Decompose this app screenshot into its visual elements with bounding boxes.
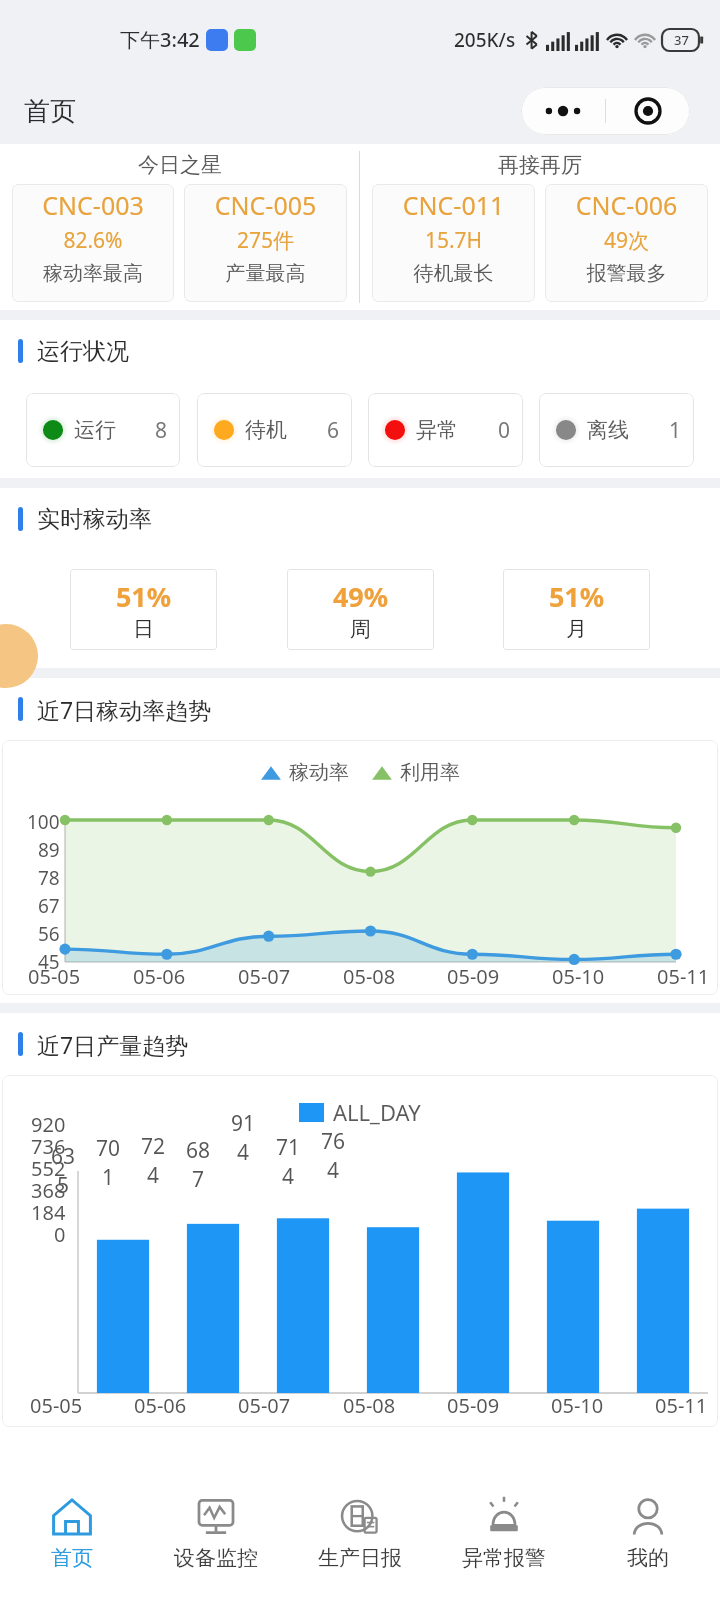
- staticText: 05-07: [238, 963, 291, 990]
- staticText: 0: [54, 1221, 66, 1243]
- staticText: 05-09: [447, 1392, 500, 1419]
- staticText: 920: [31, 1111, 66, 1133]
- staticText: 实时稼动率: [37, 505, 152, 534]
- staticText: 首页: [24, 95, 76, 128]
- staticText: 56: [38, 921, 60, 947]
- staticText: 近7日产量趋势: [37, 1029, 189, 1060]
- button[interactable]: 生产日报: [288, 1482, 432, 1600]
- staticText: 我的: [627, 1545, 669, 1571]
- staticText: 49%: [287, 578, 434, 615]
- staticText: 周: [287, 616, 434, 642]
- staticText: 运行状况: [37, 337, 129, 366]
- staticText: 100: [27, 809, 60, 835]
- staticText: 1: [669, 416, 682, 445]
- staticText: 205K/s: [454, 27, 516, 53]
- button[interactable]: 快捷操作: [0, 624, 38, 688]
- staticText: 714: [271, 1133, 305, 1191]
- staticText: 05-10: [551, 1392, 604, 1419]
- staticText: ALL_DAY: [333, 1097, 421, 1127]
- button[interactable]: 设备监控: [144, 1482, 288, 1600]
- staticText: 37: [674, 31, 689, 49]
- staticText: 15.7H: [372, 226, 535, 255]
- button[interactable]: 离线: [539, 393, 694, 467]
- staticText: 49次: [545, 226, 708, 255]
- staticText: 51%: [70, 578, 217, 615]
- staticText: 67: [38, 893, 60, 919]
- button[interactable]: CNC-011: [372, 184, 535, 302]
- staticText: 近7日稼动率趋势: [37, 694, 212, 725]
- staticText: 275件: [184, 226, 347, 255]
- staticText: 待机最长: [372, 261, 535, 286]
- button[interactable]: 51%: [503, 569, 650, 650]
- staticText: 05-06: [133, 963, 186, 990]
- button[interactable]: 更多与关闭: [521, 87, 690, 135]
- staticText: CNC-003: [12, 188, 174, 222]
- staticText: 51%: [503, 578, 650, 615]
- staticText: 914: [226, 1109, 260, 1167]
- staticText: 368: [31, 1177, 66, 1199]
- staticText: 45: [38, 949, 60, 975]
- staticText: 再接再厉: [498, 152, 582, 178]
- button[interactable]: CNC-006: [545, 184, 708, 302]
- staticText: 0: [498, 416, 511, 445]
- staticText: 05-10: [552, 963, 605, 990]
- staticText: 日: [70, 616, 217, 642]
- staticText: 05-08: [343, 1392, 396, 1419]
- staticText: 78: [38, 865, 60, 891]
- button[interactable]: 待机: [197, 393, 352, 467]
- staticText: 05-11: [655, 1392, 708, 1419]
- staticText: 89: [38, 837, 60, 863]
- staticText: 05-05: [30, 1392, 83, 1419]
- staticText: 稼动率: [289, 760, 349, 785]
- button[interactable]: 首页: [0, 1482, 144, 1600]
- staticText: 月: [503, 616, 650, 642]
- staticText: 05-05: [28, 963, 81, 990]
- staticText: 离线: [587, 417, 629, 443]
- staticText: CNC-006: [545, 188, 708, 222]
- staticText: 05-11: [657, 963, 710, 990]
- staticText: CNC-005: [184, 188, 347, 222]
- staticText: CNC-011: [372, 188, 535, 222]
- staticText: 今日之星: [138, 152, 222, 178]
- button[interactable]: CNC-005: [184, 184, 347, 302]
- staticText: 724: [136, 1132, 170, 1190]
- staticText: 8: [155, 416, 168, 445]
- staticText: 701: [91, 1134, 125, 1192]
- staticText: 待机: [245, 417, 287, 443]
- staticText: 首页: [51, 1545, 93, 1571]
- staticText: 05-07: [238, 1392, 291, 1419]
- staticText: 生产日报: [318, 1545, 402, 1571]
- button[interactable]: 51%: [70, 569, 217, 650]
- staticText: 产量最高: [184, 261, 347, 286]
- staticText: 稼动率最高: [12, 261, 174, 286]
- staticText: 05-08: [343, 963, 396, 990]
- button[interactable]: 异常报警: [432, 1482, 576, 1600]
- staticText: 报警最多: [545, 261, 708, 286]
- staticText: 764: [316, 1127, 350, 1185]
- staticText: 利用率: [400, 760, 460, 785]
- button[interactable]: 我的: [576, 1482, 720, 1600]
- staticText: 异常报警: [462, 1545, 546, 1571]
- staticText: 687: [181, 1136, 215, 1194]
- staticText: 82.6%: [12, 226, 174, 255]
- staticText: 05-09: [447, 963, 500, 990]
- button[interactable]: 异常: [368, 393, 523, 467]
- staticText: 552: [31, 1155, 66, 1177]
- staticText: 05-06: [134, 1392, 187, 1419]
- staticText: 736: [31, 1133, 66, 1155]
- staticText: 运行: [74, 417, 116, 443]
- button[interactable]: 49%: [287, 569, 434, 650]
- staticText: 下午3:42: [120, 26, 200, 53]
- staticText: 184: [31, 1199, 66, 1221]
- staticText: 635: [46, 1142, 80, 1200]
- staticText: 6: [327, 416, 340, 445]
- button[interactable]: 运行: [26, 393, 180, 467]
- staticText: 设备监控: [174, 1545, 258, 1571]
- button[interactable]: CNC-003: [12, 184, 174, 302]
- staticText: 异常: [416, 417, 458, 443]
